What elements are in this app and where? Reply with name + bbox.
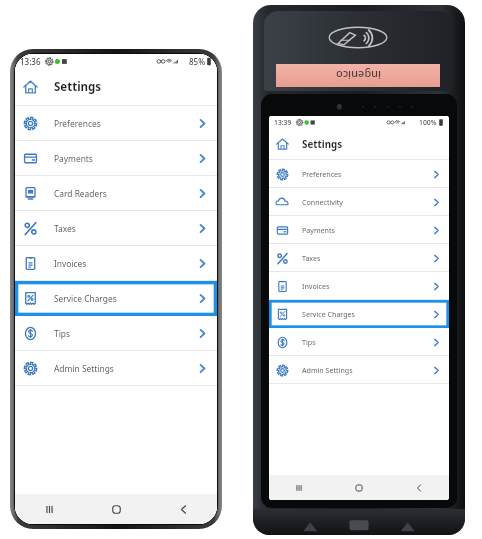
staticText: Connectivity bbox=[302, 197, 343, 207]
staticText: Settings bbox=[302, 138, 343, 151]
button[interactable]: Invoices bbox=[15, 246, 217, 281]
button[interactable]: Admin Settings bbox=[15, 351, 217, 386]
button[interactable]: Home bbox=[276, 138, 289, 151]
staticText: 100% bbox=[419, 118, 437, 127]
button[interactable]: Payments bbox=[269, 216, 449, 244]
staticText: Preferences bbox=[302, 169, 342, 179]
staticText: Service Charges bbox=[302, 309, 355, 319]
button[interactable]: Invoices bbox=[269, 272, 449, 300]
staticText: Admin Settings bbox=[302, 365, 353, 375]
button[interactable]: Service Charges bbox=[15, 281, 217, 316]
staticText: Admin Settings bbox=[54, 363, 114, 374]
staticText: Preferences bbox=[54, 118, 101, 129]
button[interactable]: Back bbox=[150, 494, 217, 524]
button[interactable]: Recents bbox=[269, 475, 329, 500]
staticText: Service Charges bbox=[54, 293, 117, 304]
button[interactable]: Service Charges bbox=[269, 300, 449, 328]
button[interactable]: Preferences bbox=[15, 106, 217, 141]
staticText: ingenico bbox=[336, 68, 381, 83]
button[interactable]: Back bbox=[389, 475, 449, 500]
button[interactable]: Home bbox=[23, 80, 38, 95]
button[interactable]: Tips bbox=[269, 328, 449, 356]
staticText: Payments bbox=[54, 153, 93, 164]
staticText: Taxes bbox=[302, 253, 321, 263]
button[interactable]: Home bbox=[83, 494, 150, 524]
button[interactable]: Preferences bbox=[269, 160, 449, 188]
button[interactable]: Admin Settings bbox=[269, 356, 449, 384]
button[interactable]: Taxes bbox=[269, 244, 449, 272]
staticText: 85% bbox=[189, 56, 205, 67]
staticText: Payments bbox=[302, 225, 335, 235]
staticText: Tips bbox=[302, 337, 316, 347]
staticText: Taxes bbox=[54, 223, 76, 234]
button[interactable]: Payments bbox=[15, 141, 217, 176]
button[interactable]: Home bbox=[329, 475, 389, 500]
button[interactable]: Card Readers bbox=[15, 176, 217, 211]
staticText: Tips bbox=[54, 328, 71, 339]
staticText: 13:36 bbox=[20, 56, 41, 67]
staticText: Settings bbox=[54, 79, 102, 95]
staticText: 13:39 bbox=[274, 118, 292, 127]
staticText: Invoices bbox=[54, 258, 87, 269]
staticText: Invoices bbox=[302, 281, 330, 291]
button[interactable]: Tips bbox=[15, 316, 217, 351]
staticText: Card Readers bbox=[54, 188, 107, 199]
button[interactable]: Recents bbox=[15, 494, 83, 524]
button[interactable]: Taxes bbox=[15, 211, 217, 246]
button[interactable]: Connectivity bbox=[269, 188, 449, 216]
